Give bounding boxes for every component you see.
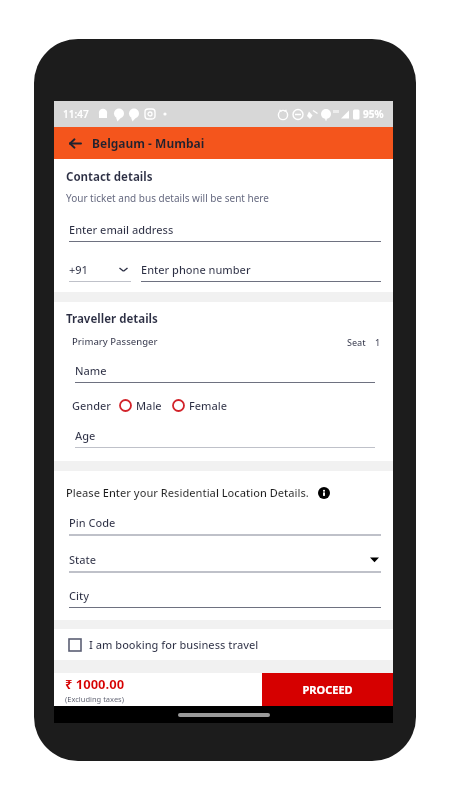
staticText: 11:47 [63, 107, 89, 121]
staticText: +91 [69, 262, 88, 277]
button[interactable]: Enter email address [69, 222, 381, 242]
staticText: Female [189, 398, 228, 413]
staticText: 1 [375, 336, 381, 348]
staticText: Gender [72, 398, 111, 413]
staticText: Age [75, 428, 96, 443]
staticText: Enter phone number [141, 262, 251, 277]
staticText: 95% [363, 107, 384, 121]
staticText: Contact details [66, 169, 153, 185]
staticText: Male [136, 398, 162, 413]
button[interactable]: Back [65, 133, 85, 153]
staticText: Belgaum - Mumbai [92, 135, 205, 151]
button[interactable]: Age [75, 428, 375, 448]
staticText: (Excluding taxes) [65, 694, 124, 704]
staticText: Pin Code [69, 515, 116, 530]
button[interactable]: Male [119, 398, 162, 413]
button[interactable]: Information [318, 487, 330, 499]
staticText: I am booking for business travel [89, 637, 259, 652]
staticText: Please Enter your Residential Location D… [66, 485, 309, 500]
staticText: State [69, 552, 97, 567]
staticText: City [69, 588, 89, 603]
button[interactable]: Name [75, 363, 375, 383]
button[interactable]: PROCEED [262, 673, 393, 706]
staticText: Seat [347, 336, 366, 348]
button[interactable]: Enter phone number [141, 262, 381, 282]
button[interactable]: Female [172, 398, 228, 413]
staticText: Traveller details [66, 311, 158, 327]
button[interactable]: I am booking for business travel [54, 629, 393, 660]
button[interactable]: +91 [69, 262, 131, 282]
button[interactable]: State [69, 552, 381, 573]
staticText: Your ticket and bus details will be sent… [66, 191, 269, 205]
button[interactable]: City [69, 588, 381, 608]
staticText: Enter email address [69, 222, 174, 237]
staticText: PROCEED [302, 682, 353, 697]
button[interactable]: Pin Code [69, 515, 381, 536]
staticText: ₹ 1000.00 [65, 675, 125, 693]
staticText: Primary Passenger [72, 335, 158, 348]
staticText: Name [75, 363, 107, 378]
